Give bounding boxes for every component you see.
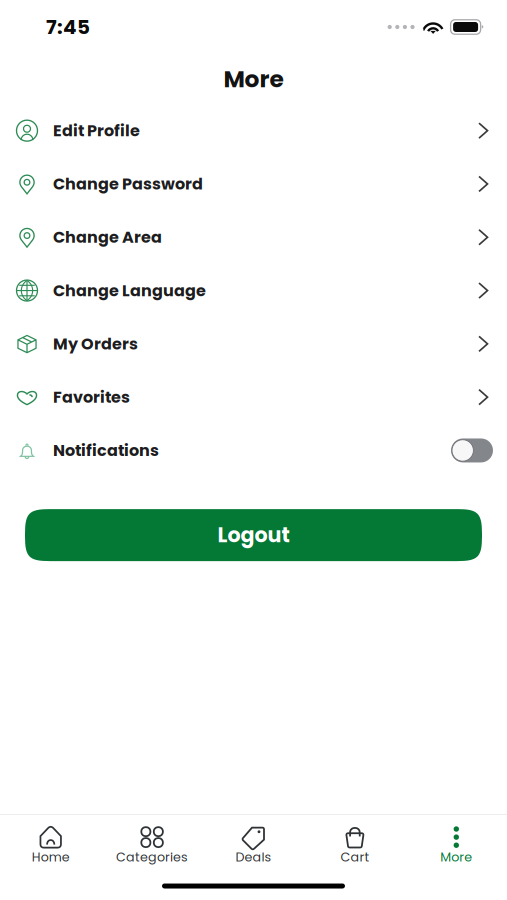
button[interactable]: More — [406, 826, 507, 866]
staticText: Categories — [116, 848, 188, 866]
staticText: Change Language — [53, 279, 206, 302]
button[interactable]: Change Area — [0, 211, 507, 264]
button[interactable]: Notifications — [0, 424, 507, 477]
button[interactable]: Change Password — [0, 157, 507, 211]
staticText: Deals — [235, 848, 271, 866]
button[interactable]: Edit Profile — [0, 104, 507, 157]
button[interactable]: Categories — [101, 826, 203, 866]
staticText: Cart — [340, 848, 369, 866]
button[interactable]: Deals — [203, 826, 304, 866]
staticText: Notifications — [53, 439, 159, 462]
staticText: 7:45 — [46, 13, 90, 41]
button[interactable]: Home — [0, 826, 101, 866]
button[interactable]: Change Language — [0, 264, 507, 317]
staticText: Home — [32, 848, 70, 866]
staticText: More — [440, 848, 472, 866]
button[interactable]: Favorites — [0, 370, 507, 424]
staticText: Change Area — [53, 226, 162, 248]
staticText: Logout — [217, 521, 289, 549]
button[interactable]: Logout — [25, 509, 482, 561]
staticText: Edit Profile — [53, 119, 140, 142]
staticText: Change Password — [53, 173, 203, 195]
button[interactable]: Cart — [304, 826, 406, 866]
staticText: My Orders — [53, 333, 138, 355]
button[interactable]: My Orders — [0, 317, 507, 370]
staticText: More — [223, 63, 283, 95]
staticText: Favorites — [53, 386, 130, 408]
